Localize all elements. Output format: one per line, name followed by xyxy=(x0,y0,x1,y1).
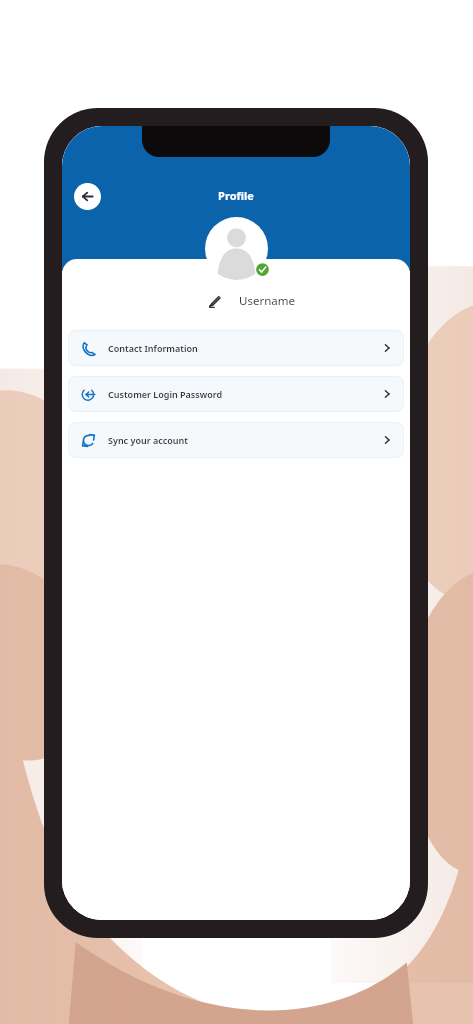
staticText: Profile xyxy=(218,188,254,203)
button[interactable]: Back xyxy=(74,183,101,210)
staticText: Sync your account xyxy=(108,434,188,446)
staticText: Username xyxy=(239,293,295,309)
button[interactable]: Customer Login Password xyxy=(68,376,404,412)
button[interactable]: Sync your account xyxy=(68,422,404,458)
button[interactable]: Username xyxy=(208,293,295,309)
button[interactable]: Contact Information xyxy=(68,330,404,366)
staticText: Customer Login Password xyxy=(108,388,223,400)
staticText: Contact Information xyxy=(108,342,198,354)
